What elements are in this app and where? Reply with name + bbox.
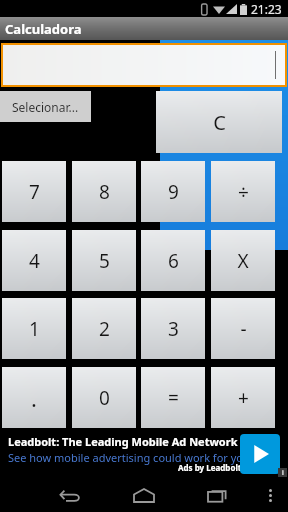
button[interactable]: 8 [72,161,136,222]
staticText: 7 [29,179,40,205]
staticText: i [282,468,284,477]
staticText: 21:23 [251,1,282,17]
button[interactable]: 3 [141,298,205,359]
button[interactable]: . [2,367,66,428]
button[interactable]: Home [126,478,162,512]
button[interactable]: = [141,367,205,428]
button[interactable] [1,43,287,87]
staticText: 2 [99,316,110,342]
button[interactable]: 5 [72,230,136,291]
staticText: 6 [168,248,179,274]
staticText: C [213,109,226,136]
button[interactable]: 9 [141,161,205,222]
button[interactable]: + [211,367,275,428]
button[interactable]: Leadbolt: The Leading Mobile Ad Network [0,430,288,478]
button[interactable]: X [211,230,275,291]
button[interactable]: C [156,91,282,153]
staticText: - [240,316,247,342]
staticText: 1 [29,316,40,342]
button[interactable]: More options [258,483,282,507]
button[interactable]: ÷ [211,161,275,222]
staticText: Ads by Leadbolt [178,462,242,473]
staticText: = [168,385,179,411]
button[interactable]: 4 [2,230,66,291]
button[interactable]: Play ad [240,434,280,474]
button[interactable]: 1 [2,298,66,359]
button[interactable]: 6 [141,230,205,291]
button[interactable]: Recent apps [200,478,236,512]
staticText: X [237,248,249,274]
staticText: 5 [99,248,110,274]
staticText: 4 [29,248,40,274]
staticText: . [31,383,37,413]
staticText: 0 [99,385,110,411]
staticText: Selecionar... [12,99,79,115]
staticText: Calculadora [5,20,82,38]
staticText: + [238,385,249,411]
button[interactable]: 0 [72,367,136,428]
staticText: See how mobile advertising could work fo… [8,450,250,465]
staticText: ÷ [238,179,249,205]
staticText: Leadbolt: The Leading Mobile Ad Network [8,434,238,449]
staticText: 9 [168,179,179,205]
button[interactable]: Back [52,478,88,512]
staticText: 3 [168,316,179,342]
button[interactable]: - [211,298,275,359]
staticText: 8 [99,179,110,205]
button[interactable]: Selecionar... [0,91,91,122]
button[interactable]: 7 [2,161,66,222]
button[interactable]: 2 [72,298,136,359]
